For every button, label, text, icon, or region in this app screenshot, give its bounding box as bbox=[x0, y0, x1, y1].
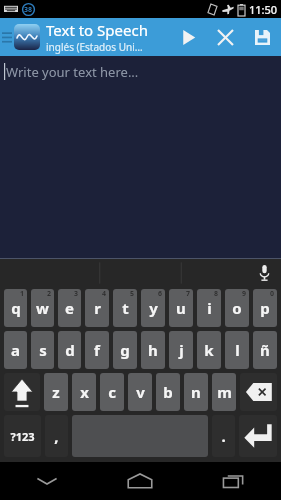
button[interactable]: Voice input bbox=[247, 259, 281, 287]
button[interactable]: Save bbox=[243, 18, 281, 56]
button[interactable]: u bbox=[169, 289, 193, 327]
button[interactable]: c bbox=[100, 373, 124, 411]
button[interactable]: m bbox=[212, 373, 236, 411]
staticText: 8 bbox=[214, 289, 219, 299]
staticText: 0 bbox=[270, 289, 275, 299]
staticText: w bbox=[36, 298, 49, 318]
staticText: Text to Speech bbox=[46, 20, 148, 40]
staticText: q bbox=[11, 298, 21, 318]
button[interactable]: Recent apps bbox=[187, 462, 281, 500]
button[interactable]: i bbox=[197, 289, 221, 327]
staticText: j bbox=[179, 340, 184, 360]
staticText: s bbox=[39, 340, 47, 360]
staticText: b bbox=[163, 382, 173, 402]
staticText: 2 bbox=[47, 289, 52, 299]
button[interactable]: ñ bbox=[253, 331, 277, 369]
staticText: ñ bbox=[260, 340, 270, 360]
staticText: h bbox=[148, 340, 158, 360]
staticText: d bbox=[65, 340, 75, 360]
button[interactable]: Shift bbox=[4, 373, 40, 411]
staticText: y bbox=[149, 298, 158, 318]
button[interactable]: Hide keyboard bbox=[0, 462, 93, 500]
staticText: 5 bbox=[130, 289, 135, 299]
staticText: 38 bbox=[24, 5, 33, 15]
button[interactable]: r bbox=[85, 289, 109, 327]
button[interactable]: , bbox=[45, 415, 68, 457]
button[interactable]: d bbox=[58, 331, 81, 369]
staticText: r bbox=[94, 298, 101, 318]
button[interactable]: e bbox=[58, 289, 81, 327]
button[interactable]: z bbox=[44, 373, 68, 411]
staticText: a bbox=[11, 340, 20, 360]
button[interactable]: f bbox=[85, 331, 109, 369]
button[interactable]: l bbox=[225, 331, 249, 369]
staticText: c bbox=[108, 382, 116, 402]
button[interactable]: s bbox=[31, 331, 54, 369]
button[interactable]: a bbox=[4, 331, 27, 369]
button[interactable]: v bbox=[128, 373, 152, 411]
staticText: e bbox=[65, 298, 74, 318]
button[interactable]: y bbox=[141, 289, 165, 327]
staticText: inglés (Estados Uni… bbox=[46, 40, 143, 54]
staticText: ?123 bbox=[10, 429, 35, 444]
button[interactable]: Navigation drawer bbox=[0, 18, 14, 56]
button[interactable]: k bbox=[197, 331, 221, 369]
button[interactable]: q bbox=[4, 289, 27, 327]
button[interactable]: Enter bbox=[239, 415, 277, 457]
staticText: . bbox=[221, 426, 226, 446]
button[interactable]: j bbox=[169, 331, 193, 369]
staticText: l bbox=[235, 340, 240, 360]
staticText: n bbox=[191, 382, 201, 402]
staticText: p bbox=[260, 298, 270, 318]
staticText: 9 bbox=[242, 289, 247, 299]
staticText: u bbox=[176, 298, 186, 318]
button[interactable]: Clear bbox=[207, 18, 243, 56]
staticText: Write your text here... bbox=[6, 63, 139, 81]
button[interactable]: g bbox=[113, 331, 137, 369]
staticText: i bbox=[207, 298, 212, 318]
staticText: f bbox=[94, 340, 100, 360]
staticText: 1 bbox=[20, 289, 25, 299]
button[interactable]: n bbox=[184, 373, 208, 411]
button[interactable]: h bbox=[141, 331, 165, 369]
staticText: x bbox=[80, 382, 89, 402]
button[interactable]: Play bbox=[169, 18, 207, 56]
button[interactable]: w bbox=[31, 289, 54, 327]
staticText: m bbox=[217, 382, 232, 402]
staticText: 3 bbox=[74, 289, 79, 299]
staticText: g bbox=[120, 340, 130, 360]
staticText: k bbox=[204, 340, 214, 360]
button[interactable]: Backspace bbox=[240, 373, 277, 411]
button[interactable]: Home bbox=[93, 462, 187, 500]
button[interactable]: t bbox=[113, 289, 137, 327]
button[interactable]: b bbox=[156, 373, 180, 411]
staticText: 11:50 bbox=[249, 2, 278, 17]
button[interactable]: . bbox=[212, 415, 235, 457]
button[interactable]: p bbox=[253, 289, 277, 327]
button[interactable]: ?123 bbox=[4, 415, 41, 457]
staticText: z bbox=[52, 382, 60, 402]
staticText: 4 bbox=[102, 289, 107, 299]
button[interactable]: o bbox=[225, 289, 249, 327]
staticText: 6 bbox=[158, 289, 163, 299]
button[interactable]: x bbox=[72, 373, 96, 411]
staticText: 7 bbox=[186, 289, 191, 299]
staticText: t bbox=[122, 298, 129, 318]
staticText: o bbox=[232, 298, 242, 318]
staticText: , bbox=[54, 426, 59, 446]
staticText: v bbox=[136, 382, 145, 402]
